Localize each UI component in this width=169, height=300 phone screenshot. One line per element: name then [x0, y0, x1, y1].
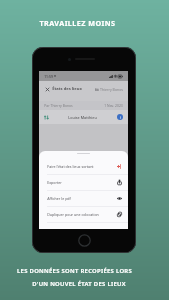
- button[interactable]: Exporter: [39, 175, 128, 190]
- button[interactable]: Afficher le pdf: [39, 191, 128, 206]
- staticText: Exporter: [47, 180, 62, 185]
- staticText: 11:59: [44, 74, 53, 79]
- staticText: Thierry Bonos: [100, 87, 123, 92]
- staticText: Dupliquer pour une colocation: [47, 212, 99, 217]
- staticText: Louise Matthieu: [68, 115, 97, 120]
- staticText: États des lieux: [52, 86, 82, 92]
- staticText: Faire l'état des lieux sortant: [47, 164, 94, 169]
- staticText: Afficher le pdf: [47, 196, 71, 201]
- staticText: 1 Nov. 2023: [104, 103, 123, 108]
- button[interactable]: Dupliquer pour une colocation: [39, 207, 128, 222]
- button[interactable]: Fermer: [44, 86, 51, 93]
- staticText: LES DONNÉES SONT RECOPIÉES LORS: [17, 267, 132, 275]
- staticText: D'UN NOUVEL ÉTAT DES LIEUX: [32, 280, 126, 288]
- button[interactable]: Louise Matthieu: [39, 110, 128, 124]
- button[interactable]: Faire l'état des lieux sortant: [39, 159, 128, 174]
- staticText: TRAVAILLEZ MOINS: [39, 18, 116, 28]
- staticText: Par Thierry Bonos: [44, 103, 73, 108]
